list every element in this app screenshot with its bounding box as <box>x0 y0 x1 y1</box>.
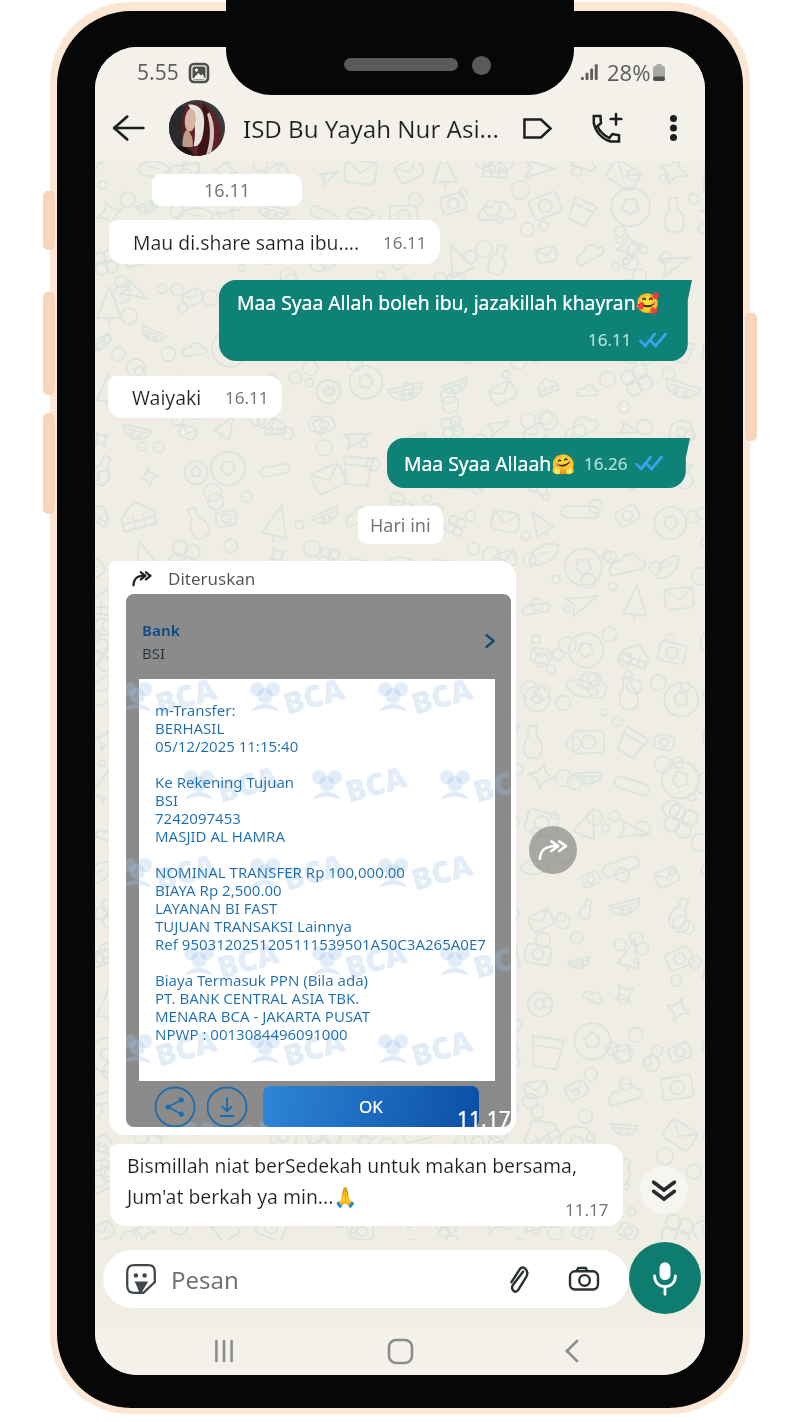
staticText: Pesan <box>171 1263 239 1296</box>
staticText: BCA <box>469 931 511 988</box>
staticText: OK <box>359 1095 383 1118</box>
button[interactable]: Mau di.share sama ibu.... <box>109 220 440 264</box>
staticText: Waiyaki <box>132 384 202 410</box>
staticText: 11.17 <box>457 1105 511 1127</box>
button[interactable]: Label <box>513 104 561 152</box>
button[interactable]: More options <box>651 106 695 150</box>
button[interactable]: Back <box>550 1329 594 1373</box>
staticText: BSI <box>142 643 166 663</box>
staticText: 5.55 <box>137 58 179 87</box>
button[interactable]: OK <box>263 1086 479 1127</box>
staticText: BCA <box>407 1019 477 1076</box>
staticText: m-Transfer: BERHASIL 05/12/2025 11:15:40… <box>155 702 486 1044</box>
button[interactable]: Profile photo <box>169 100 225 156</box>
staticText: BCA <box>279 843 349 900</box>
button[interactable]: Diteruskan <box>109 561 516 1135</box>
button[interactable]: Forward <box>529 826 577 874</box>
staticText: 11.17 <box>565 1198 609 1221</box>
staticText: Maa Syaa Allaah🤗 <box>404 450 576 476</box>
staticText: BCA <box>341 755 411 812</box>
staticText: 16.11 <box>383 231 427 254</box>
button[interactable]: Scroll to bottom <box>640 1166 688 1214</box>
button[interactable]: Camera <box>562 1257 606 1301</box>
staticText: BCA <box>469 1107 511 1127</box>
staticText: 16.11 <box>588 328 632 351</box>
staticText: 16.26 <box>584 452 628 475</box>
button[interactable]: 16.11 <box>152 174 302 206</box>
staticText: BCA <box>341 1107 411 1127</box>
staticText: BCA <box>407 843 477 900</box>
staticText: BCA <box>469 755 511 812</box>
button[interactable]: Bank <box>126 616 511 666</box>
staticText: Hari ini <box>370 513 431 538</box>
staticText: Jum'at berkah ya min...🙏 <box>127 1183 358 1209</box>
staticText: Bank <box>142 620 181 640</box>
staticText: BCA <box>279 1019 349 1076</box>
button[interactable]: Video call <box>583 104 631 152</box>
button[interactable]: Maa Syaa Allah boleh ibu, jazakillah kha… <box>219 280 692 361</box>
staticText: BCA <box>407 667 477 724</box>
button[interactable]: Home <box>378 1329 422 1373</box>
staticText: BCA <box>151 667 221 724</box>
button[interactable]: Recents <box>202 1329 246 1373</box>
button[interactable]: Maa Syaa Allaah🤗 <box>387 438 690 488</box>
button[interactable]: Stickers <box>119 1257 163 1301</box>
staticText: Diteruskan <box>168 567 256 590</box>
staticText: BCA <box>213 1107 283 1127</box>
button[interactable]: ISD Bu Yayah Nur Asi... <box>243 112 499 145</box>
button[interactable]: Share <box>154 1086 196 1127</box>
button[interactable]: Download <box>206 1086 248 1127</box>
staticText: 16.11 <box>225 386 269 409</box>
button[interactable]: Back <box>103 103 153 153</box>
staticText: 28% <box>607 57 651 87</box>
staticText: Maa Syaa Allah boleh ibu, jazakillah kha… <box>237 289 660 315</box>
staticText: BCA <box>279 667 349 724</box>
button[interactable]: Waiyaki <box>108 376 282 418</box>
staticText: BCA <box>341 931 411 988</box>
button[interactable]: Bismillah niat berSedekah untuk makan be… <box>110 1144 623 1226</box>
staticText: Bismillah niat berSedekah untuk makan be… <box>127 1152 578 1178</box>
button[interactable]: Attach <box>495 1257 539 1301</box>
staticText: 16.11 <box>204 178 251 203</box>
button[interactable]: Hari ini <box>358 506 443 544</box>
button[interactable]: Voice message <box>629 1242 701 1314</box>
staticText: BCA <box>213 931 283 988</box>
staticText: BCA <box>151 843 221 900</box>
staticText: BCA <box>151 1019 221 1076</box>
staticText: BCA <box>213 755 283 812</box>
button[interactable]: Stickers <box>103 1250 629 1308</box>
staticText: Mau di.share sama ibu.... <box>133 229 360 255</box>
